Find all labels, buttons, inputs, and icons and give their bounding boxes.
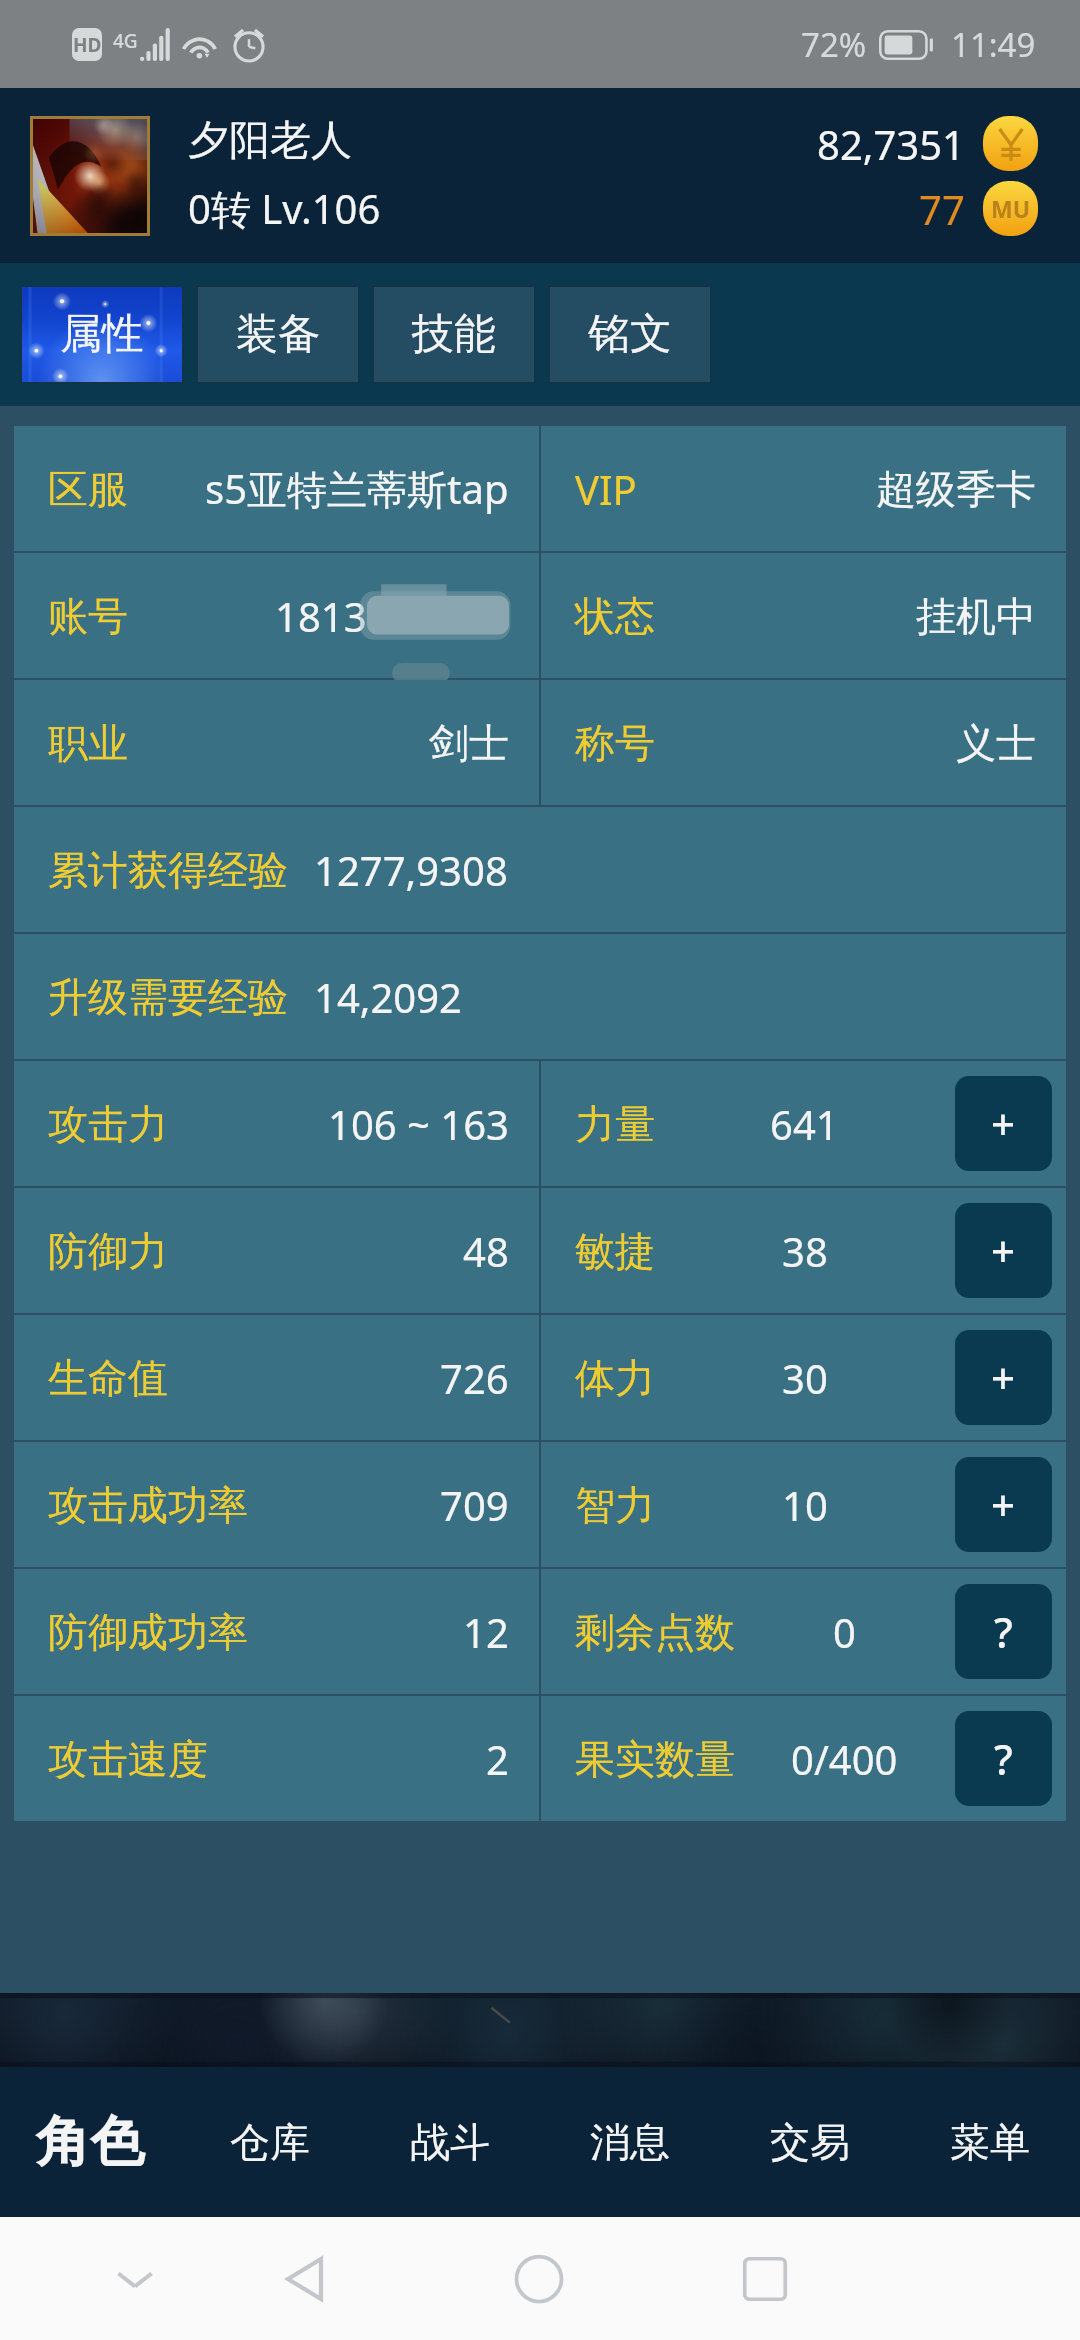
staticText: 1813 bbox=[275, 589, 367, 643]
staticText: 82,7351 bbox=[817, 117, 965, 171]
button[interactable]: 攻击速度 bbox=[14, 1696, 539, 1821]
staticText: 称号 bbox=[575, 718, 655, 768]
staticText: s5亚特兰蒂斯tap bbox=[205, 461, 509, 516]
staticText: 4G bbox=[113, 28, 138, 54]
button[interactable]: 角色 bbox=[0, 2067, 180, 2217]
button[interactable]: 仓库 bbox=[180, 2067, 360, 2217]
staticText: 状态 bbox=[575, 591, 655, 641]
staticText: 铭文 bbox=[588, 308, 672, 361]
button[interactable]: 装备 bbox=[198, 287, 358, 382]
button[interactable]: 区服 bbox=[14, 426, 539, 551]
staticText: 剑士 bbox=[429, 718, 509, 768]
button[interactable]: 账号 bbox=[14, 553, 539, 678]
staticText: 超级季卡 bbox=[876, 464, 1036, 514]
button[interactable]: 生命值 bbox=[14, 1315, 539, 1440]
staticText: 生命值 bbox=[48, 1353, 168, 1403]
button[interactable]: Add attribute point bbox=[955, 1203, 1052, 1298]
button[interactable]: Add attribute point bbox=[955, 1330, 1052, 1425]
button[interactable]: 防御力 bbox=[14, 1188, 539, 1313]
staticText: 14,2092 bbox=[314, 970, 462, 1024]
button[interactable]: Add attribute point bbox=[955, 1457, 1052, 1552]
staticText: 防御力 bbox=[48, 1226, 168, 1276]
button[interactable]: 技能 bbox=[374, 287, 534, 382]
button[interactable]: 属性 bbox=[22, 287, 182, 382]
button[interactable]: 状态 bbox=[541, 553, 1066, 678]
staticText: 体力 bbox=[575, 1353, 655, 1403]
staticText: + bbox=[991, 1222, 1016, 1279]
staticText: 防御成功率 bbox=[48, 1607, 248, 1657]
staticText: 0/400 bbox=[791, 1732, 898, 1786]
staticText: 智力 bbox=[575, 1480, 655, 1530]
button[interactable]: 攻击成功率 bbox=[14, 1442, 539, 1567]
staticText: ? bbox=[994, 1603, 1013, 1660]
staticText: 726 bbox=[440, 1351, 509, 1405]
staticText: 10 bbox=[782, 1478, 828, 1532]
staticText: VIP bbox=[575, 462, 637, 516]
staticText: 709 bbox=[440, 1478, 509, 1532]
staticText: 果实数量 bbox=[575, 1734, 735, 1784]
staticText: 攻击速度 bbox=[48, 1734, 208, 1784]
button[interactable]: 累计获得经验 bbox=[14, 807, 1066, 932]
button[interactable]: 消息 bbox=[540, 2067, 720, 2217]
staticText: 641 bbox=[770, 1097, 839, 1151]
staticText: + bbox=[991, 1349, 1016, 1406]
staticText: 职业 bbox=[48, 718, 128, 768]
button[interactable]: 铭文 bbox=[550, 287, 710, 382]
staticText: ? bbox=[994, 1730, 1013, 1787]
button[interactable]: Back bbox=[258, 2231, 354, 2327]
staticText: 仓库 bbox=[230, 2117, 310, 2167]
button[interactable]: 交易 bbox=[720, 2067, 900, 2217]
staticText: 11:49 bbox=[951, 22, 1036, 67]
button[interactable]: 菜单 bbox=[900, 2067, 1080, 2217]
staticText: 剩余点数 bbox=[575, 1607, 735, 1657]
button[interactable]: Recents bbox=[717, 2231, 813, 2327]
button[interactable]: 职业 bbox=[14, 680, 539, 805]
staticText: 挂机中 bbox=[916, 591, 1036, 641]
staticText: 77 bbox=[919, 182, 965, 236]
staticText: 战斗 bbox=[410, 2117, 490, 2167]
button[interactable]: Help bbox=[955, 1584, 1052, 1679]
staticText: 义士 bbox=[956, 718, 1036, 768]
staticText: MU bbox=[991, 193, 1031, 224]
staticText: 72% bbox=[801, 22, 867, 67]
staticText: 区服 bbox=[48, 464, 128, 514]
staticText: 属性 bbox=[60, 308, 144, 361]
button[interactable]: VIP bbox=[541, 426, 1066, 551]
staticText: 攻击力 bbox=[48, 1099, 168, 1149]
button[interactable]: Home bbox=[491, 2231, 587, 2327]
staticText: 1277,9308 bbox=[314, 843, 508, 897]
staticText: 装备 bbox=[236, 308, 320, 361]
staticText: 夕阳老人 bbox=[188, 115, 352, 167]
staticText: 48 bbox=[463, 1224, 509, 1278]
staticText: + bbox=[991, 1476, 1016, 1533]
staticText: HD bbox=[73, 32, 102, 58]
staticText: 12 bbox=[463, 1605, 509, 1659]
staticText: 2 bbox=[486, 1732, 509, 1786]
staticText: 消息 bbox=[590, 2117, 670, 2167]
staticText: 30 bbox=[782, 1351, 828, 1405]
staticText: 技能 bbox=[412, 308, 496, 361]
staticText: 菜单 bbox=[950, 2117, 1030, 2167]
staticText: 累计获得经验 bbox=[48, 845, 288, 895]
staticText: + bbox=[991, 1095, 1016, 1152]
staticText: 106 ~ 163 bbox=[328, 1097, 509, 1151]
button[interactable]: Add attribute point bbox=[955, 1076, 1052, 1171]
button[interactable]: 升级需要经验 bbox=[14, 934, 1066, 1059]
staticText: 攻击成功率 bbox=[48, 1480, 248, 1530]
button[interactable]: 攻击力 bbox=[14, 1061, 539, 1186]
button[interactable]: Hide keyboard bbox=[87, 2231, 183, 2327]
staticText: 力量 bbox=[575, 1099, 655, 1149]
staticText: 升级需要经验 bbox=[48, 972, 288, 1022]
button[interactable]: 称号 bbox=[541, 680, 1066, 805]
staticText: 0 bbox=[833, 1605, 856, 1659]
button[interactable]: 战斗 bbox=[360, 2067, 540, 2217]
button[interactable]: 防御成功率 bbox=[14, 1569, 539, 1694]
button[interactable]: Help bbox=[955, 1711, 1052, 1806]
staticText: 38 bbox=[782, 1224, 828, 1278]
staticText: 交易 bbox=[770, 2117, 850, 2167]
staticText: 0转 Lv.106 bbox=[188, 181, 381, 236]
staticText: 角色 bbox=[36, 2108, 144, 2176]
staticText: 敏捷 bbox=[575, 1226, 655, 1276]
staticText: 账号 bbox=[48, 591, 128, 641]
